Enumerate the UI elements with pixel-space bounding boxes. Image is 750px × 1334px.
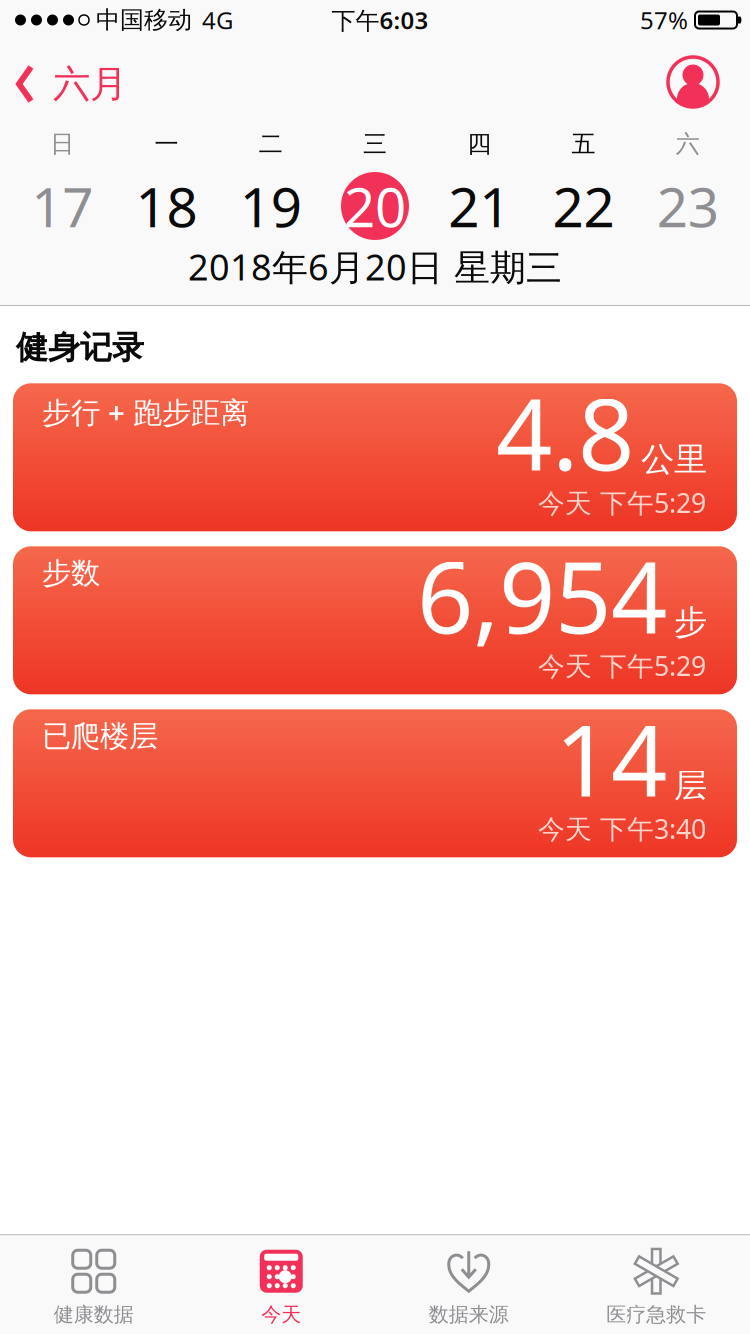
staticText: 22 — [553, 170, 615, 242]
staticText: 步数 — [42, 555, 100, 591]
button[interactable]: 医疗急救卡 — [562, 1249, 750, 1327]
staticText: 4.8 — [496, 367, 634, 498]
button[interactable]: 21 — [427, 166, 531, 246]
staticText: 五 — [572, 129, 596, 159]
button[interactable] — [668, 57, 718, 107]
staticText: 今天 下午3:40 — [538, 811, 706, 846]
staticText: 17 — [31, 170, 93, 242]
staticText: 一 — [154, 129, 178, 159]
staticText: 层 — [674, 765, 707, 806]
staticText: 二 — [259, 129, 283, 159]
button[interactable]: 23 — [636, 166, 740, 246]
staticText: 今天 下午5:29 — [538, 648, 706, 683]
staticText: 公里 — [641, 439, 707, 480]
button[interactable]: 17 — [10, 166, 114, 246]
button[interactable]: 19 — [219, 166, 323, 246]
staticText: 已爬楼层 — [42, 718, 158, 754]
button[interactable]: 六月 — [16, 61, 127, 107]
staticText: 健身记录 — [16, 328, 144, 367]
staticText: 4G — [202, 4, 233, 36]
staticText: 健康数据 — [54, 1302, 134, 1327]
button[interactable]: 22 — [531, 166, 636, 246]
button[interactable]: 步数 — [13, 546, 737, 694]
staticText: 20 — [344, 170, 406, 242]
staticText: 六月 — [53, 61, 127, 107]
button[interactable]: 数据来源 — [375, 1249, 562, 1327]
staticText: 21 — [448, 170, 510, 242]
button[interactable]: 已爬楼层 — [13, 709, 737, 857]
button[interactable]: 20 — [323, 166, 427, 246]
button[interactable]: 健康数据 — [0, 1249, 187, 1327]
staticText: 今天 — [261, 1302, 301, 1327]
staticText: 六 — [676, 129, 700, 159]
staticText: 今天 下午5:29 — [538, 485, 706, 520]
staticText: 2018年6月20日 星期三 — [188, 243, 562, 290]
staticText: 57% — [640, 4, 688, 36]
staticText: 18 — [135, 170, 197, 242]
staticText: 下午6:03 — [331, 4, 428, 36]
staticText: 数据来源 — [429, 1302, 509, 1327]
staticText: 中国移动 — [96, 5, 192, 35]
staticText: 23 — [657, 170, 719, 242]
staticText: 医疗急救卡 — [606, 1302, 706, 1327]
staticText: 19 — [240, 170, 302, 242]
button[interactable]: 今天 — [187, 1249, 375, 1327]
staticText: 步行 + 跑步距离 — [42, 392, 249, 431]
staticText: 四 — [467, 129, 491, 159]
staticText: 14 — [555, 693, 667, 824]
button[interactable]: 18 — [114, 166, 219, 246]
staticText: 步 — [674, 602, 707, 643]
button[interactable]: 步行 + 跑步距离 — [13, 383, 737, 531]
staticText: 三 — [363, 129, 387, 159]
staticText: 日 — [50, 129, 74, 159]
staticText: 6,954 — [417, 530, 667, 661]
